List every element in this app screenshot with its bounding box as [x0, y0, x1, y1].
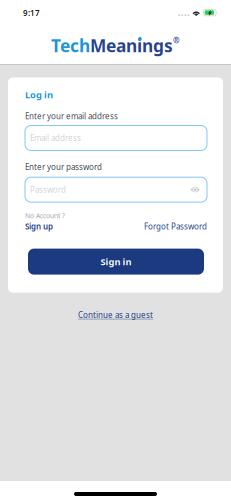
- button[interactable]: Forgot Password: [144, 221, 207, 232]
- staticText: Enter your email address: [25, 111, 118, 121]
- staticText: Enter your password: [25, 161, 102, 172]
- staticText: 9:17: [23, 8, 40, 18]
- button[interactable]: Sign in: [28, 249, 204, 275]
- staticText: Meanings: [90, 34, 173, 57]
- staticText: Sign in: [100, 255, 131, 268]
- staticText: Password: [30, 184, 66, 195]
- staticText: Forgot Password: [144, 221, 207, 232]
- staticText: No Account ?: [25, 211, 65, 220]
- staticText: Sign up: [25, 221, 53, 232]
- staticText: ®: [173, 35, 180, 46]
- staticText: Log in: [25, 88, 53, 101]
- staticText: Email address: [30, 133, 81, 143]
- button[interactable]: Continue as a guest: [78, 310, 153, 320]
- staticText: Continue as a guest: [78, 310, 153, 320]
- button[interactable]: No Account ?: [25, 211, 65, 232]
- staticText: Tech: [51, 34, 90, 57]
